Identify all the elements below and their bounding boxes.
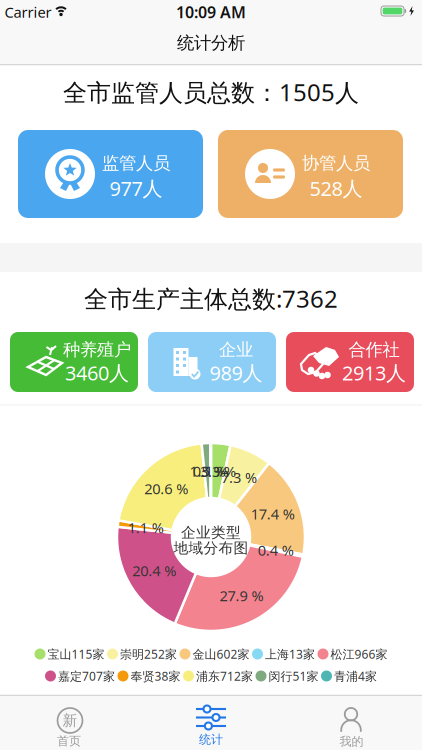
staticText: 3.3 % — [200, 462, 236, 481]
staticText: 监管人员 — [102, 153, 170, 174]
staticText: 3460人 — [65, 359, 129, 386]
button[interactable]: 新 — [35, 697, 105, 749]
staticText: 全市生产主体总数:7362 — [84, 283, 338, 314]
staticText: 统计分析 — [177, 32, 245, 54]
staticText: 宝山115家 — [47, 646, 104, 662]
staticText: 嘉定707家 — [58, 668, 115, 684]
staticText: 统计 — [199, 732, 223, 747]
staticText: 20.4 % — [132, 561, 176, 580]
staticText: 2913人 — [342, 359, 406, 386]
button[interactable]: 合作社 — [286, 332, 414, 392]
staticText: 协管人员 — [302, 153, 370, 174]
button[interactable]: 企业 — [148, 332, 276, 392]
staticText: 闵行51家 — [268, 668, 318, 684]
staticText: 金山602家 — [192, 646, 249, 662]
staticText: 全市监管人员总数：1505人 — [63, 76, 359, 108]
staticText: 松江966家 — [330, 646, 387, 662]
staticText: 27.9 % — [219, 586, 263, 605]
staticText: 977人 — [109, 175, 162, 201]
staticText: 首页 — [57, 734, 81, 748]
staticText: 青浦4家 — [334, 668, 377, 684]
staticText: 崇明252家 — [120, 646, 177, 662]
staticText: 528人 — [309, 175, 362, 201]
button[interactable]: 种养殖户 — [10, 332, 138, 392]
staticText: 7.3 % — [221, 467, 257, 487]
staticText: 0.4 % — [258, 540, 294, 560]
staticText: 上海13家 — [265, 646, 315, 662]
staticText: 奉贤38家 — [130, 668, 180, 684]
staticText: 企业 — [219, 339, 253, 360]
staticText: 浦东712家 — [196, 668, 253, 684]
staticText: Carrier — [4, 2, 51, 22]
staticText: 合作社 — [348, 339, 399, 360]
staticText: 17.4 % — [251, 504, 295, 524]
staticText: 地域分布图 — [173, 539, 248, 557]
button[interactable]: 监管人员 — [18, 130, 203, 218]
button[interactable]: 我的 — [317, 697, 387, 749]
staticText: 989人 — [209, 359, 262, 386]
staticText: 1.5 % — [189, 461, 225, 481]
staticText: 0.1 % — [193, 461, 229, 481]
staticText: 企业类型 — [181, 523, 241, 541]
staticText: 20.6 % — [144, 479, 188, 498]
staticText: 10:09 AM — [176, 1, 246, 23]
button[interactable]: 协管人员 — [218, 130, 403, 218]
button[interactable]: 统计 — [176, 697, 246, 749]
staticText: 新 — [62, 711, 77, 729]
staticText: 1.1 % — [128, 518, 164, 537]
staticText: 我的 — [339, 734, 363, 749]
staticText: 种养殖户 — [63, 339, 131, 360]
